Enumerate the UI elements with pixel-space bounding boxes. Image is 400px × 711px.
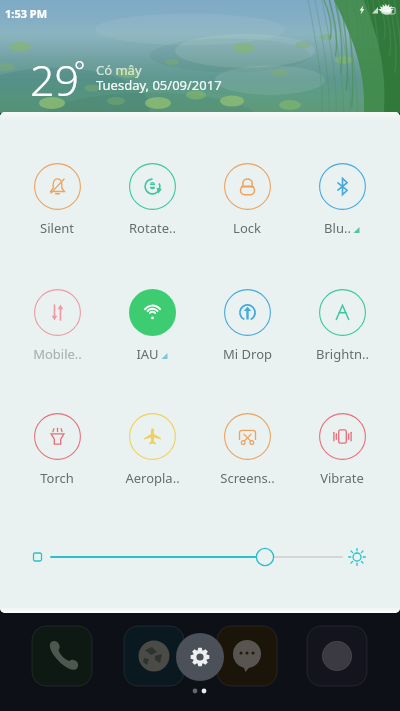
button[interactable]: Mi Drop xyxy=(212,289,282,361)
button[interactable]: Mobile.. xyxy=(22,289,92,361)
staticText: Vibrate xyxy=(320,469,364,487)
button[interactable]: Rotate.. xyxy=(117,163,187,235)
staticText: Torch xyxy=(40,469,74,487)
staticText: Blu.. xyxy=(324,219,351,237)
staticText: Rotate.. xyxy=(129,219,176,237)
staticText: Lock xyxy=(233,219,261,237)
button[interactable]: Aeropla.. xyxy=(117,413,187,485)
button[interactable]: Vibrate xyxy=(307,413,377,485)
staticText: 1:53 PM xyxy=(5,6,48,21)
button[interactable]: Blu.. xyxy=(307,163,377,235)
button[interactable]: Torch xyxy=(22,413,92,485)
staticText: Silent xyxy=(40,219,74,237)
button[interactable]: Settings xyxy=(176,633,224,681)
button[interactable]: Brightn.. xyxy=(307,289,377,361)
staticText: Brightn.. xyxy=(316,345,369,363)
button[interactable]: Screens.. xyxy=(212,413,282,485)
button[interactable]: IAU xyxy=(117,289,187,361)
staticText: Có mây xyxy=(96,61,142,79)
button[interactable]: Lock xyxy=(212,163,282,235)
button[interactable]: Silent xyxy=(22,163,92,235)
staticText: 29 xyxy=(30,50,80,109)
staticText: Tuesday, 05/09/2017 xyxy=(96,76,222,94)
staticText: ° xyxy=(74,52,86,87)
staticText: Mi Drop xyxy=(223,345,272,363)
staticText: Screens.. xyxy=(220,469,275,487)
staticText: IAU xyxy=(136,345,159,363)
staticText: Mobile.. xyxy=(33,345,82,363)
staticText: Aeropla.. xyxy=(125,469,180,487)
button[interactable] xyxy=(0,537,400,577)
